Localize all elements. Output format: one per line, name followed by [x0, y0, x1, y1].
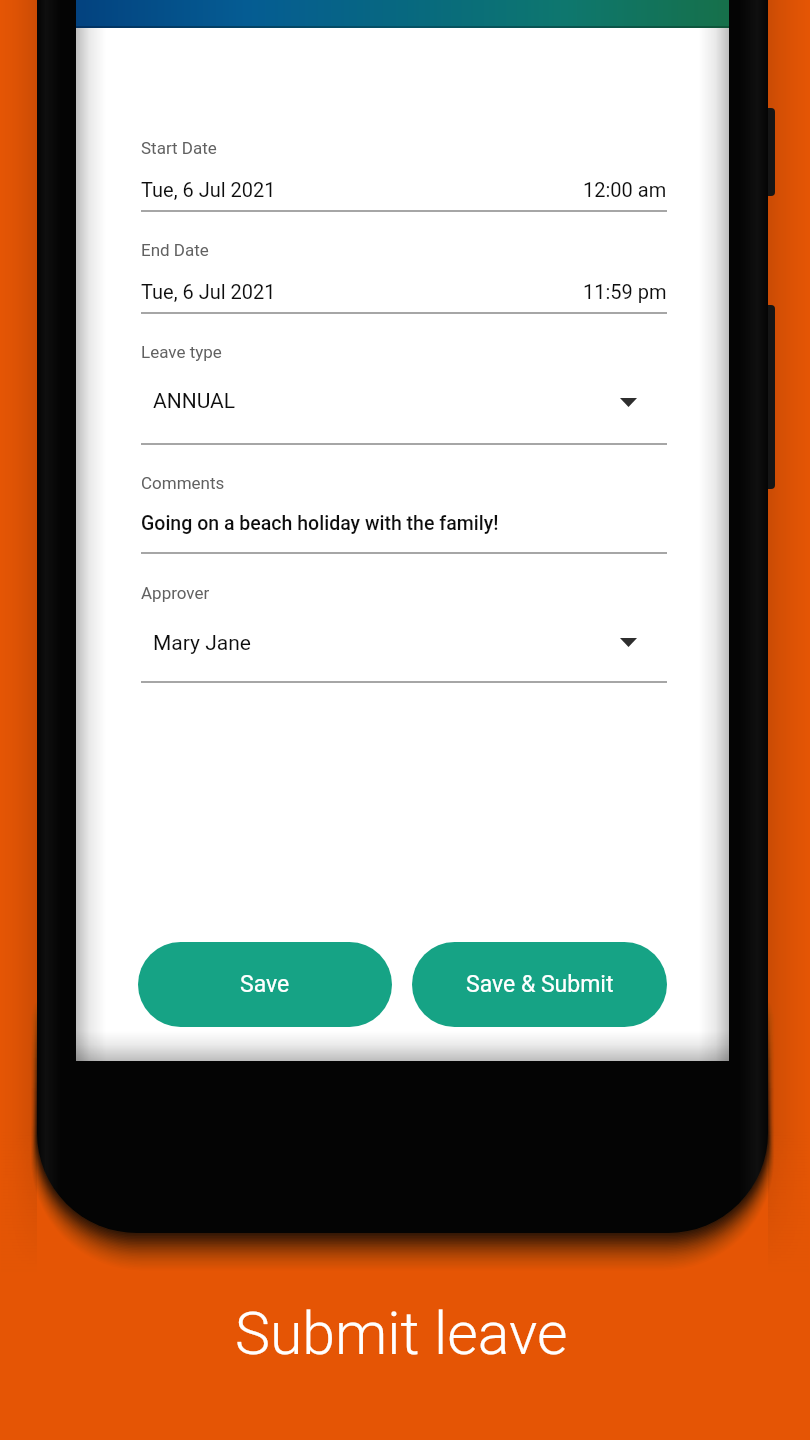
button[interactable]: Comments — [76, 463, 729, 564]
button[interactable]: Save & Submit — [412, 942, 667, 1027]
button[interactable]: Approver — [76, 572, 729, 694]
staticText: Going on a beach holiday with the family… — [141, 512, 499, 535]
staticText: Tue, 6 Jul 2021 — [141, 178, 276, 201]
staticText: End Date — [141, 240, 209, 260]
staticText: Leave type — [141, 342, 222, 362]
button[interactable]: Start Date — [76, 128, 729, 222]
button[interactable]: Leave type — [76, 332, 729, 455]
staticText: Mary Jane — [153, 631, 251, 656]
staticText: Submit leave — [235, 1299, 568, 1368]
button[interactable]: Save — [138, 942, 392, 1027]
button[interactable]: End Date — [76, 230, 729, 324]
staticText: Save & Submit — [466, 971, 614, 998]
button[interactable]: Open dropdown — [610, 624, 646, 660]
staticText: Save — [240, 971, 290, 998]
staticText: Comments — [141, 473, 225, 493]
staticText: Approver — [141, 583, 210, 603]
staticText: ANNUAL — [153, 389, 236, 414]
staticText: 11:59 pm — [583, 280, 667, 303]
button[interactable]: Open dropdown — [610, 384, 646, 420]
staticText: Tue, 6 Jul 2021 — [141, 280, 276, 303]
staticText: 12:00 am — [583, 178, 667, 201]
staticText: Start Date — [141, 138, 217, 158]
